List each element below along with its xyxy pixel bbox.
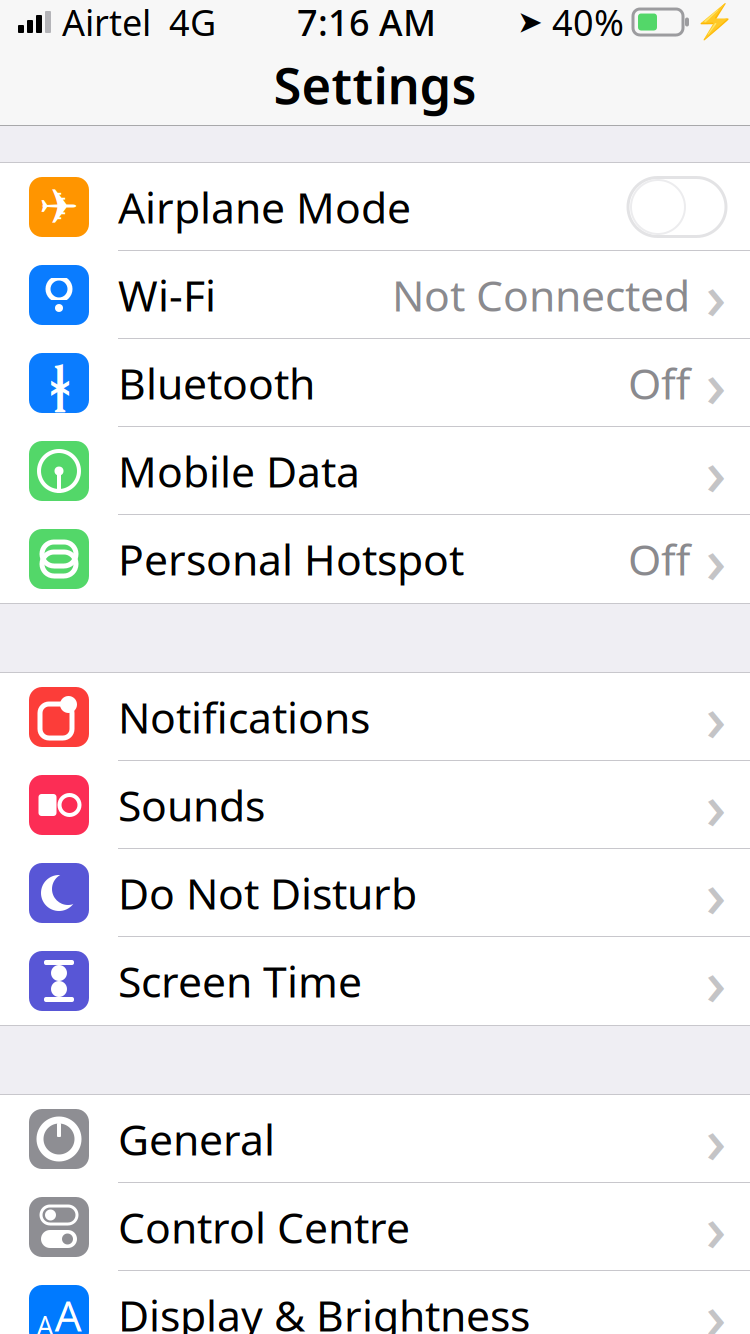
staticText: Control Centre <box>118 1199 410 1255</box>
staticText: 4G <box>169 0 216 46</box>
staticText: Off <box>628 355 690 411</box>
staticText: Sounds <box>118 777 265 833</box>
button[interactable]: ᚼ <box>0 339 750 427</box>
button[interactable]: Wi-Fi <box>0 251 750 339</box>
staticText: ➤ <box>517 5 543 39</box>
staticText: ✈ <box>39 180 79 234</box>
staticText: › <box>705 1184 726 1269</box>
button[interactable]: Control Centre <box>0 1183 750 1271</box>
staticText: 40% <box>552 0 624 46</box>
staticText: Settings <box>273 51 476 118</box>
button[interactable]: ✈ <box>0 163 750 251</box>
staticText: › <box>705 1272 726 1334</box>
staticText: › <box>705 428 726 513</box>
staticText: General <box>118 1111 275 1167</box>
staticText: Bluetooth <box>118 355 315 411</box>
button[interactable]: Do Not Disturb <box>0 849 750 937</box>
staticText: Notifications <box>118 689 370 745</box>
staticText: A <box>54 1287 81 1334</box>
staticText: › <box>705 1096 726 1181</box>
button[interactable]: Sounds <box>0 761 750 849</box>
staticText: › <box>705 674 726 759</box>
staticText: › <box>705 516 726 601</box>
staticText: Not Connected <box>392 267 690 323</box>
staticText: › <box>705 252 726 337</box>
staticText: Screen Time <box>118 953 362 1009</box>
staticText: ᚼ <box>49 351 68 415</box>
staticText: Off <box>628 531 690 587</box>
staticText: Display & Brightness <box>118 1287 530 1334</box>
button[interactable]: General <box>0 1095 750 1183</box>
button[interactable]: A <box>0 1271 750 1334</box>
staticText: Mobile Data <box>118 443 360 499</box>
staticText: A <box>36 1308 53 1334</box>
staticText: Airplane Mode <box>118 179 411 235</box>
staticText: Wi-Fi <box>118 267 216 323</box>
staticText: › <box>705 938 726 1023</box>
button[interactable]: Mobile Data <box>0 427 750 515</box>
button[interactable]: Personal Hotspot <box>0 515 750 603</box>
staticText: Airtel <box>62 0 151 46</box>
staticText: Personal Hotspot <box>118 531 464 587</box>
button[interactable]: Screen Time <box>0 937 750 1025</box>
button[interactable]: Notifications <box>0 673 750 761</box>
staticText: › <box>705 340 726 425</box>
staticText: Do Not Disturb <box>118 865 417 921</box>
staticText: › <box>705 850 726 935</box>
staticText: › <box>705 762 726 847</box>
staticText: 7:16 AM <box>297 0 436 46</box>
staticText: ⚡ <box>694 3 736 41</box>
